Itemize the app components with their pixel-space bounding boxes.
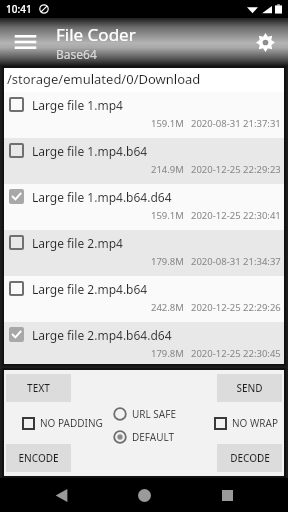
staticText: Large file 1.mp4.b64.d64 [32,189,172,205]
button[interactable]: Recent apps [205,478,249,512]
button[interactable]: Home [122,478,166,512]
staticText: NO WRAP [232,416,278,430]
button[interactable]: Back [39,478,83,512]
staticText: /storage/emulated/0/Download [7,70,201,88]
staticText: Large file 1.mp4.b64 [32,143,148,159]
staticText: File Coder [56,23,136,46]
button[interactable]: NO WRAP [214,416,278,430]
button[interactable]: Large file 1.mp4.b64.d64 [2,184,286,230]
staticText: Large file 2.mp4 [32,235,123,251]
button[interactable]: Large file 2.mp4.b64.d64 [2,322,286,366]
staticText: TEXT [27,381,50,395]
button[interactable]: DEFAULT [113,430,175,444]
staticText: 2020-12-25 22:30:41 [191,209,281,222]
staticText: 10:41 [6,2,32,16]
staticText: 159.1M [151,209,184,222]
button[interactable]: TEXT [6,374,71,402]
button[interactable]: Large file 2.mp4.b64 [2,276,286,322]
staticText: Large file 1.mp4 [32,97,123,113]
staticText: 2020-12-25 22:29:26 [191,301,281,314]
staticText: 159.1M [151,117,184,130]
button[interactable]: Large file 1.mp4.b64 [2,138,286,184]
staticText: 214.9M [151,163,184,176]
staticText: DEFAULT [132,430,175,444]
button[interactable]: Settings [248,25,282,59]
staticText: 179.8M [151,255,184,268]
staticText: 2020-08-31 21:34:37 [191,255,281,268]
button[interactable]: DECODE [217,444,282,472]
staticText: 2020-08-31 21:37:31 [191,117,281,130]
button[interactable]: Menu [8,25,42,59]
button[interactable]: Large file 1.mp4 [2,92,286,138]
staticText: 179.8M [151,347,184,360]
button[interactable]: ENCODE [6,444,71,472]
button[interactable]: URL SAFE [113,407,176,421]
staticText: NO PADDING [40,416,103,430]
button[interactable]: NO PADDING [22,416,103,430]
staticText: Large file 2.mp4.b64.d64 [32,327,172,343]
staticText: ENCODE [18,451,59,465]
button[interactable]: SEND [217,374,282,402]
staticText: Large file 2.mp4.b64 [32,281,148,297]
staticText: DECODE [230,451,270,465]
staticText: 2020-12-25 22:29:23 [191,163,281,176]
staticText: 242.8M [151,301,184,314]
staticText: SEND [236,381,263,395]
staticText: URL SAFE [132,407,176,421]
staticText: 2020-12-25 22:30:45 [191,347,281,360]
staticText: Base64 [56,46,97,62]
button[interactable]: Large file 2.mp4 [2,230,286,276]
